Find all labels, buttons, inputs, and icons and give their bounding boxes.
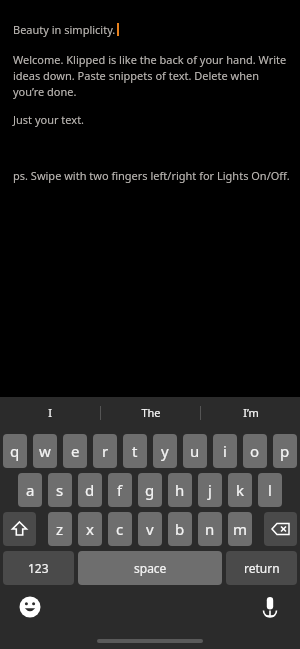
button[interactable]: Emoji <box>16 593 44 621</box>
staticText: Just your text. <box>13 112 85 127</box>
staticText: f <box>117 480 123 500</box>
button[interactable]: l <box>258 473 282 507</box>
button[interactable]: r <box>93 434 117 468</box>
staticText: k <box>236 480 245 500</box>
staticText: u <box>190 441 200 461</box>
button[interactable]: The <box>101 397 200 428</box>
staticText: y <box>161 441 169 461</box>
button[interactable]: m <box>228 512 252 546</box>
button[interactable]: t <box>123 434 147 468</box>
staticText: q <box>10 441 20 461</box>
button[interactable]: f <box>108 473 132 507</box>
staticText: space <box>134 560 167 576</box>
button[interactable]: w <box>33 434 57 468</box>
staticText: o <box>250 441 260 461</box>
staticText: z <box>56 519 64 539</box>
button[interactable]: n <box>198 512 222 546</box>
button[interactable]: p <box>273 434 297 468</box>
staticText: w <box>39 441 51 461</box>
staticText: The <box>141 405 161 420</box>
staticText: i <box>223 441 227 461</box>
button[interactable]: z <box>48 512 72 546</box>
staticText: t <box>132 441 138 461</box>
staticText: I’m <box>243 405 259 420</box>
staticText: c <box>116 519 124 539</box>
button[interactable]: b <box>168 512 192 546</box>
button[interactable]: a <box>18 473 42 507</box>
button[interactable]: Backspace <box>264 512 297 546</box>
button[interactable]: s <box>48 473 72 507</box>
button[interactable]: Shift <box>3 512 36 546</box>
staticText: Beauty in simplicity. <box>13 22 116 37</box>
button[interactable]: v <box>138 512 162 546</box>
button[interactable]: q <box>3 434 27 468</box>
staticText: h <box>175 480 185 500</box>
staticText: v <box>146 519 154 539</box>
staticText: return <box>244 560 280 576</box>
staticText: s <box>56 480 64 500</box>
button[interactable]: h <box>168 473 192 507</box>
staticText: b <box>175 519 185 539</box>
staticText: Welcome. Klipped is like the back of you… <box>13 52 290 99</box>
staticText: n <box>205 519 215 539</box>
button[interactable]: o <box>243 434 267 468</box>
button[interactable]: i <box>213 434 237 468</box>
button[interactable]: d <box>78 473 102 507</box>
button[interactable]: e <box>63 434 87 468</box>
staticText: ps. Swipe with two fingers left/right fo… <box>13 168 290 183</box>
button[interactable]: 123 <box>3 551 74 585</box>
button[interactable]: j <box>198 473 222 507</box>
button[interactable]: I <box>0 397 100 428</box>
button[interactable]: space <box>78 551 222 585</box>
button[interactable]: u <box>183 434 207 468</box>
button[interactable]: g <box>138 473 162 507</box>
staticText: l <box>268 480 272 500</box>
staticText: p <box>280 441 290 461</box>
staticText: e <box>71 441 80 461</box>
staticText: r <box>102 441 109 461</box>
staticText: a <box>26 480 35 500</box>
staticText: I <box>48 405 52 420</box>
staticText: j <box>208 480 212 500</box>
staticText: x <box>86 519 94 539</box>
staticText: d <box>85 480 95 500</box>
button[interactable]: y <box>153 434 177 468</box>
button[interactable]: c <box>108 512 132 546</box>
staticText: g <box>145 480 155 500</box>
button[interactable]: Dictate <box>256 593 284 621</box>
staticText: m <box>233 519 248 539</box>
button[interactable]: x <box>78 512 102 546</box>
button[interactable]: return <box>226 551 297 585</box>
button[interactable]: I’m <box>201 397 300 428</box>
staticText: 123 <box>28 560 49 576</box>
button[interactable]: k <box>228 473 252 507</box>
